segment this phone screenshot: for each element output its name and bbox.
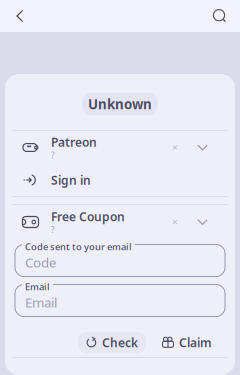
button[interactable]: Search (207, 0, 233, 32)
staticText: ? (51, 225, 54, 235)
staticText: ? (51, 150, 54, 161)
staticText: Free Coupon (51, 209, 125, 225)
button[interactable]: Free Coupon (5, 205, 235, 239)
staticText: Code sent to your email (25, 240, 132, 253)
staticText: Code (25, 253, 57, 271)
staticText: Unknown (88, 95, 152, 113)
staticText: Email (25, 280, 50, 293)
button[interactable]: Back (7, 0, 33, 32)
staticText: Email (25, 293, 57, 311)
button[interactable]: Check (78, 332, 146, 353)
staticText: Check (102, 334, 138, 350)
staticText: Patreon (51, 134, 97, 150)
staticText: Claim (179, 334, 212, 350)
button[interactable]: Sign in (5, 164, 235, 196)
button[interactable]: Claim (154, 332, 220, 353)
staticText: Sign in (51, 172, 91, 188)
button[interactable]: Patreon (5, 131, 235, 164)
